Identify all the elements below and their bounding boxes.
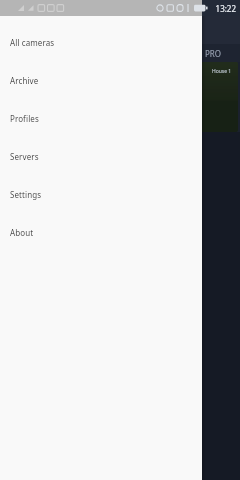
button[interactable]: All cameras: [0, 23, 202, 61]
button[interactable]: Servers: [0, 137, 202, 175]
button[interactable]: Archive: [0, 61, 202, 99]
staticText: Settings: [10, 189, 42, 200]
staticText: Archive: [10, 75, 39, 86]
staticText: Profiles: [10, 113, 39, 124]
button[interactable]: About: [0, 213, 202, 251]
staticText: 13:22: [215, 3, 236, 14]
staticText: House 1: [212, 68, 232, 75]
button[interactable]: Camera preview: [2, 62, 238, 132]
staticText: About: [10, 227, 34, 238]
staticText: Servers: [10, 151, 39, 162]
staticText: All cameras: [10, 37, 55, 48]
button[interactable]: Profiles: [0, 99, 202, 137]
staticText: PRO: [205, 48, 222, 59]
button[interactable]: Settings: [0, 175, 202, 213]
